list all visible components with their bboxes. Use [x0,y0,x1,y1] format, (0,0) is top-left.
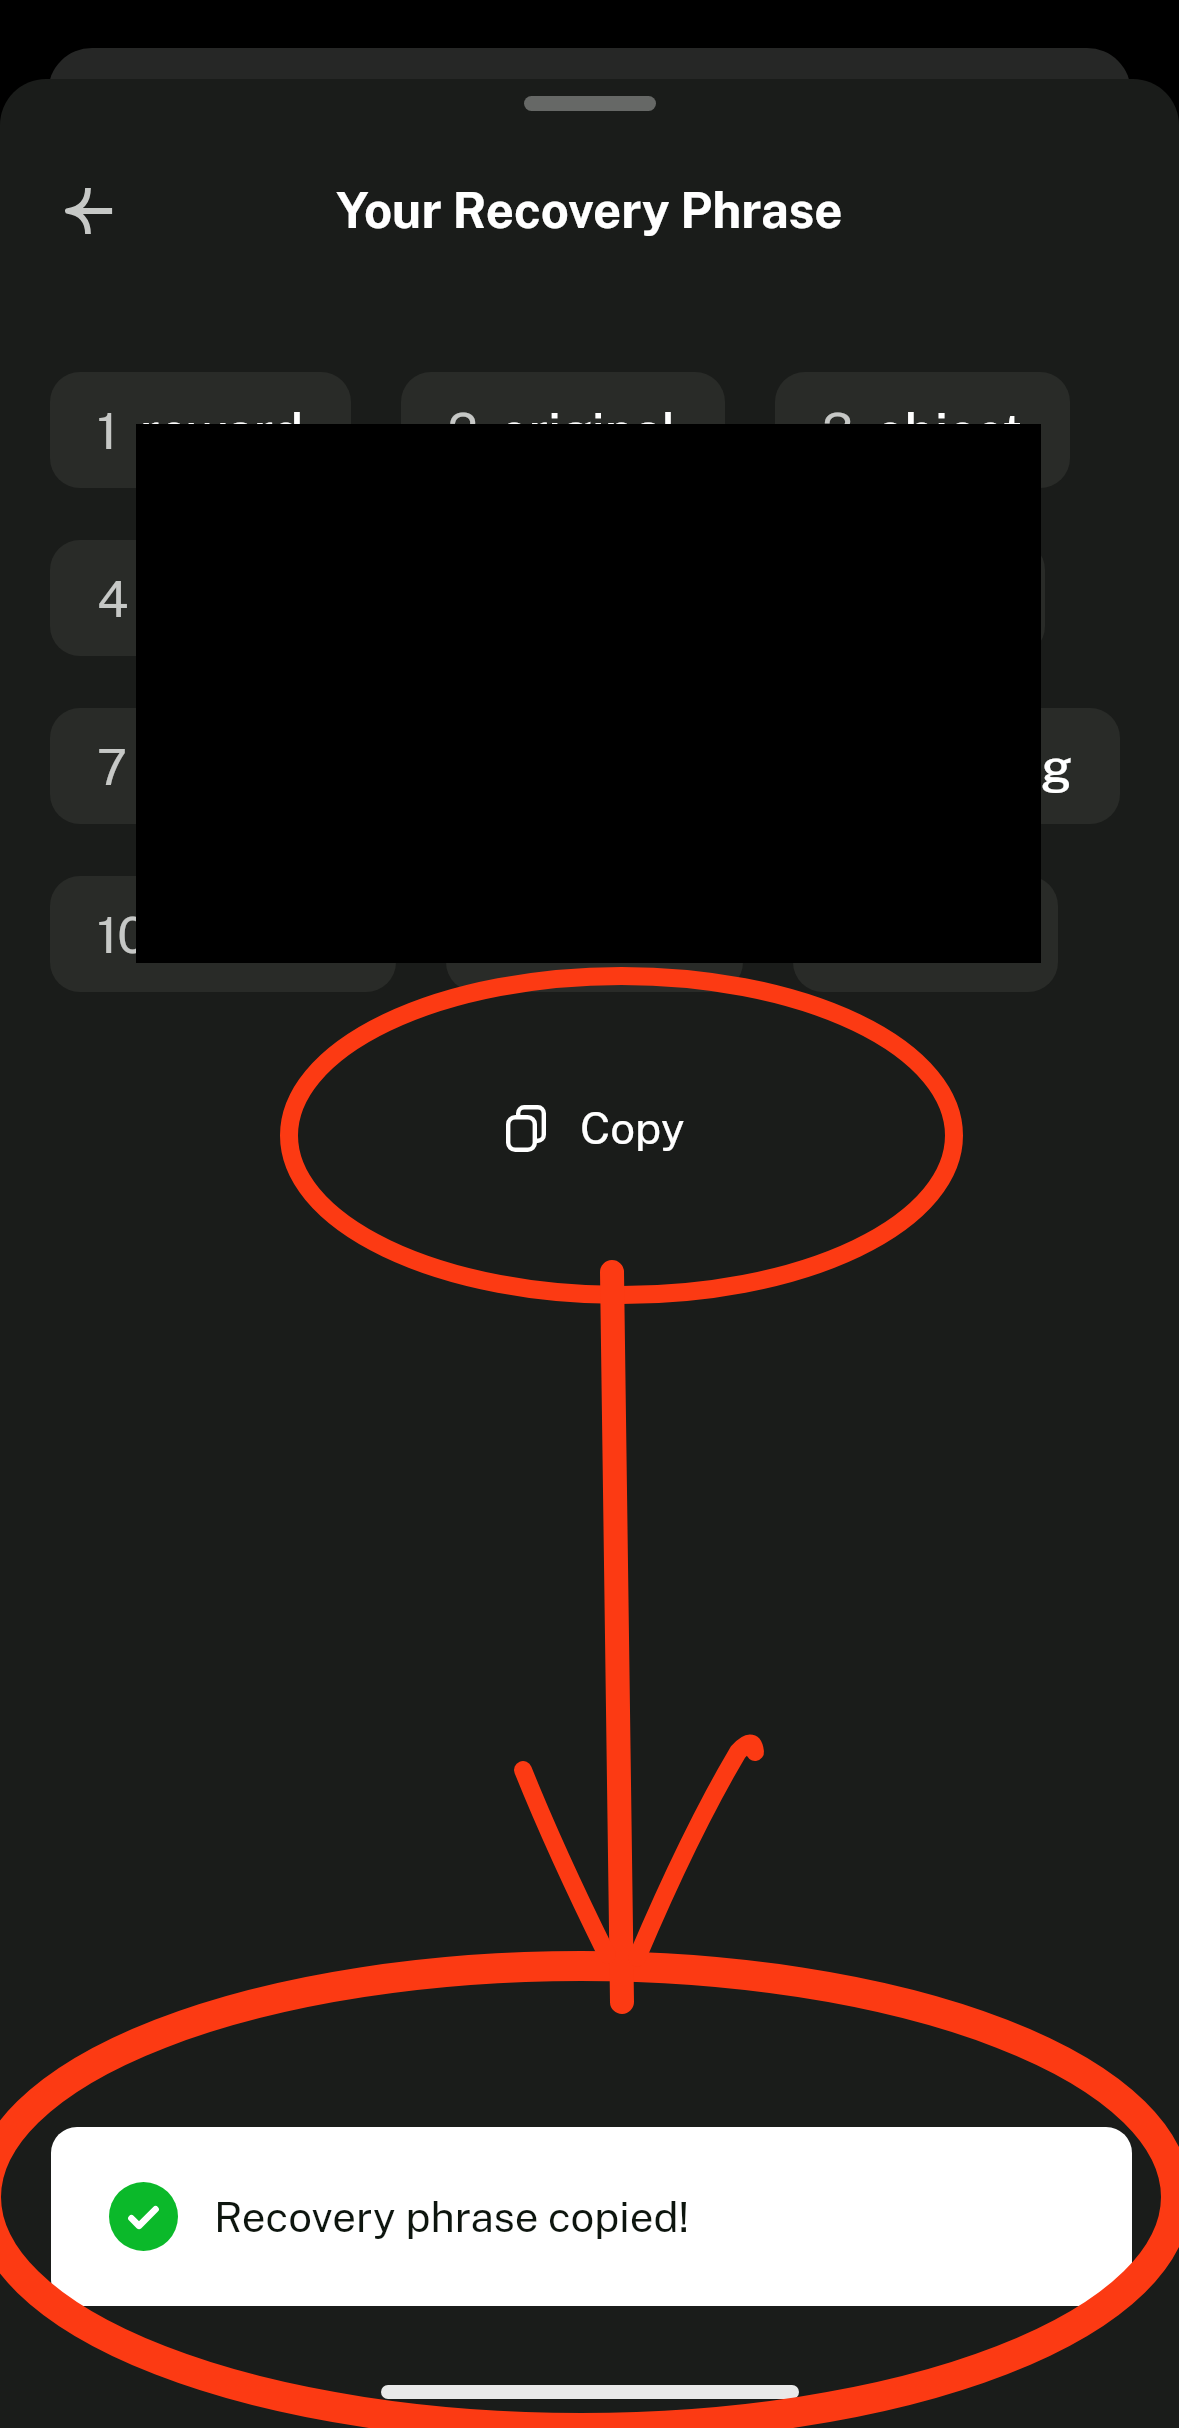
button[interactable]: Recovery phrase copied! [51,2127,1132,2306]
staticText: 3 [822,401,854,460]
button[interactable]: Copy [445,1073,745,1183]
staticText: 4 [97,569,129,628]
staticText: 1 [97,401,118,460]
button[interactable]: 2 [401,372,725,488]
button[interactable]: 4 [50,540,361,656]
staticText: velvet [556,905,696,964]
staticText: Copy [580,1102,685,1154]
button[interactable]: 9 [777,708,1120,824]
button[interactable]: Back [30,151,150,271]
staticText: 7 [97,737,128,796]
staticText: original [500,401,678,460]
staticText: 11 [493,905,534,964]
staticText: object [876,401,1023,460]
button[interactable]: 7 [50,708,344,824]
button[interactable]: 12 [793,876,1058,992]
staticText: 2 [448,401,478,460]
button[interactable]: 10 [50,876,396,992]
button[interactable]: 11 [446,876,743,992]
button[interactable]: 6 [741,540,1045,656]
staticText: 12 [840,905,891,964]
staticText: coin [913,905,1011,964]
staticText: window [170,905,349,964]
staticText: Recovery phrase copied! [214,2192,690,2241]
staticText: reward [140,401,304,460]
staticText: morning [878,737,1073,796]
button[interactable]: 3 [775,372,1070,488]
staticText: 10 [97,905,148,964]
staticText: Your Recovery Phrase [336,181,843,239]
button[interactable]: 1 [50,372,351,488]
